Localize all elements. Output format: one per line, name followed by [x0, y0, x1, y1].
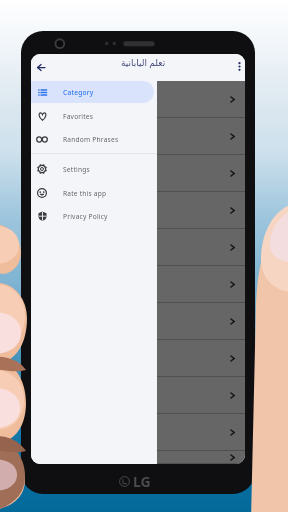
staticText: Rate this app: [63, 189, 107, 198]
button[interactable]: Category item: [157, 266, 245, 303]
button[interactable]: Back: [32, 58, 50, 76]
button[interactable]: Category item: [157, 229, 245, 266]
button[interactable]: Category item: [157, 414, 245, 451]
button[interactable]: Category item: [157, 118, 245, 155]
button[interactable]: Category item: [157, 340, 245, 377]
staticText: Settings: [63, 165, 90, 174]
button[interactable]: Privacy Policy: [31, 205, 154, 227]
staticText: Favorites: [63, 112, 94, 121]
button[interactable]: Favorites: [31, 105, 154, 127]
staticText: تعلم اليابانية: [121, 56, 166, 68]
staticText: Privacy Policy: [63, 212, 108, 221]
button[interactable]: Settings: [31, 158, 154, 180]
button[interactable]: More options: [231, 58, 245, 74]
button[interactable]: Category item: [157, 155, 245, 192]
button[interactable]: Category item: [157, 192, 245, 229]
button[interactable]: Rate this app: [31, 182, 154, 204]
staticText: Category: [63, 88, 94, 97]
button[interactable]: Category item: [157, 377, 245, 414]
button[interactable]: Category item: [157, 303, 245, 340]
button[interactable]: Random Phrases: [31, 128, 154, 150]
staticText: Random Phrases: [63, 135, 119, 144]
button[interactable]: Category: [31, 81, 154, 103]
button[interactable]: Category item: [157, 451, 245, 464]
staticText: LG: [133, 472, 151, 491]
button[interactable]: Category item: [157, 81, 245, 118]
